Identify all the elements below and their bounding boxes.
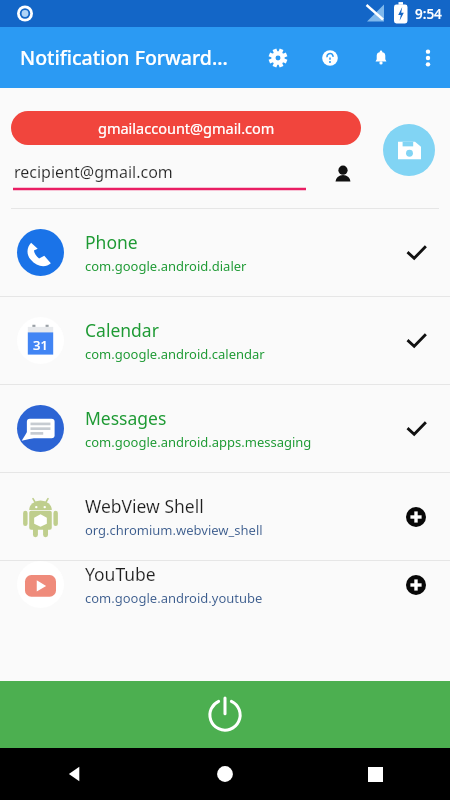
button[interactable]: Save: [383, 124, 435, 176]
button[interactable]: Notifications: [356, 27, 406, 88]
staticText: Messages: [85, 406, 167, 430]
button[interactable]: Back: [0, 748, 150, 800]
button[interactable]: Phone: [0, 209, 450, 296]
button[interactable]: gmailaccount@gmail.com: [11, 111, 361, 145]
staticText: com.google.android.dialer: [85, 257, 247, 275]
button[interactable]: Power toggle: [0, 681, 450, 748]
staticText: WebView Shell: [85, 494, 204, 518]
button[interactable]: More options: [406, 27, 450, 88]
staticText: com.google.android.apps.messaging: [85, 433, 312, 451]
staticText: 9:54: [415, 5, 442, 23]
button[interactable]: Messages: [0, 385, 450, 472]
staticText: Notification Forward…: [20, 44, 242, 71]
staticText: Phone: [85, 230, 138, 254]
button[interactable]: Home: [150, 748, 300, 800]
staticText: 31: [33, 336, 48, 354]
button[interactable]: 31: [0, 297, 450, 384]
staticText: Calendar: [85, 318, 159, 342]
staticText: com.google.android.youtube: [85, 589, 263, 607]
button[interactable]: Help: [304, 27, 356, 88]
button[interactable]: Choose contact: [326, 158, 360, 192]
staticText: gmailaccount@gmail.com: [98, 118, 275, 138]
staticText: YouTube: [85, 562, 156, 586]
staticText: com.google.android.calendar: [85, 345, 265, 363]
button[interactable]: YouTube: [0, 561, 450, 608]
button[interactable]: Settings: [252, 27, 304, 88]
staticText: org.chromium.webview_shell: [85, 521, 263, 539]
button[interactable]: Recent apps: [300, 748, 450, 800]
button[interactable]: WebView Shell: [0, 473, 450, 560]
staticText: recipient@gmail.com: [14, 161, 173, 183]
